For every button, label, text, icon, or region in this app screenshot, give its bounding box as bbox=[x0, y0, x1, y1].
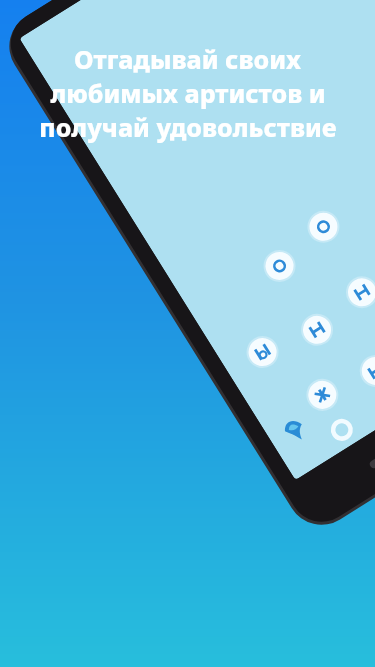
button[interactable]: Отгадывай своих bbox=[0, 0, 375, 667]
staticText: получай удовольствие bbox=[39, 110, 337, 144]
staticText: Отгадывай своих bbox=[74, 42, 301, 76]
staticText: любимых артистов и bbox=[50, 76, 326, 110]
